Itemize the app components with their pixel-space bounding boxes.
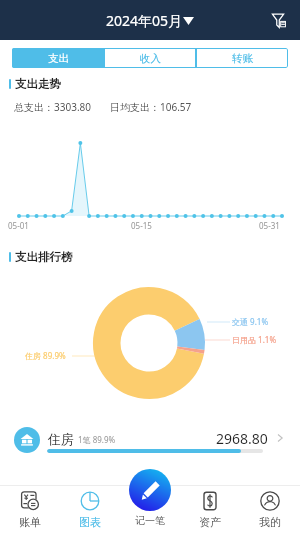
button[interactable]: 资产 [180,485,240,533]
button[interactable]: 记一笔 [129,469,171,527]
button[interactable] [120,485,180,533]
staticText: 收入 [140,52,161,65]
staticText: 日均支出：106.57 [110,100,192,114]
staticText: 记一笔 [135,514,165,527]
button[interactable]: 我的 [240,485,300,533]
button[interactable]: 2024年05月 [106,11,194,30]
staticText: 日用品 1.1% [232,334,277,345]
button[interactable]: Filter [268,9,290,31]
button[interactable]: 住房 [0,418,300,466]
staticText: 转账 [232,52,253,65]
staticText: 支出走势 [15,77,61,91]
staticText: 住房 [48,431,74,447]
staticText: 支出排行榜 [15,250,73,264]
staticText: 我的 [259,515,281,529]
button[interactable]: 账单 [0,485,60,533]
staticText: 2968.80 [216,429,268,448]
staticText: 2024年05月 [106,11,183,30]
button[interactable]: 图表 [60,485,120,533]
staticText: 资产 [199,515,221,529]
staticText: 支出 [48,52,69,65]
button[interactable]: 收入 [104,48,196,68]
staticText: 1笔 89.9% [78,434,116,445]
staticText: 图表 [79,515,101,529]
staticText: 交通 9.1% [232,316,269,327]
staticText: 05-01 [8,220,29,231]
staticText: 账单 [19,515,41,529]
staticText: 05-31 [259,220,280,231]
staticText: 总支出：3303.80 [14,100,91,114]
button[interactable]: 转账 [196,48,288,68]
staticText: 05-15 [131,220,152,231]
button[interactable]: 支出 [12,48,104,68]
other: Details [275,433,285,443]
staticText: 住房 89.9% [25,350,66,361]
